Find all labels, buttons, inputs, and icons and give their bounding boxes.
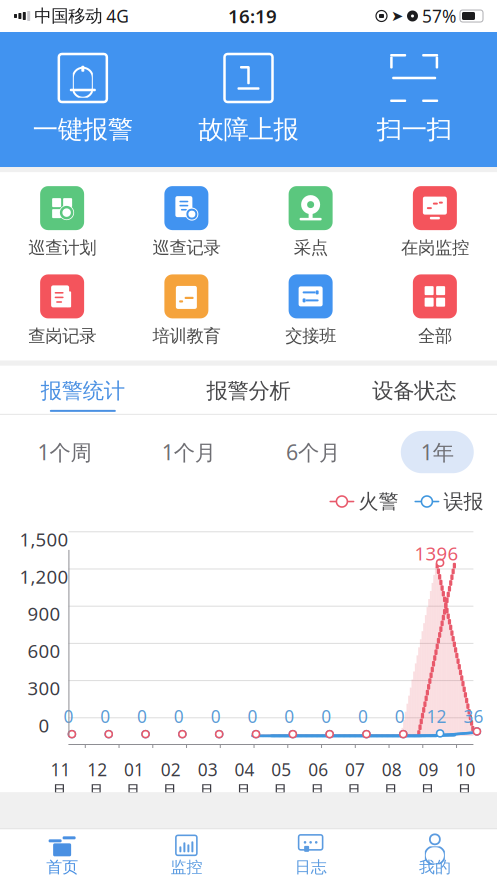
staticText: 扫一扫 <box>377 114 452 145</box>
staticText: 0 <box>38 713 49 738</box>
staticText: ➤ <box>391 8 403 24</box>
staticText: 0 <box>247 705 257 728</box>
staticText: 全部 <box>418 325 452 347</box>
staticText: 在岗监控 <box>401 237 469 258</box>
staticText: 0 <box>284 705 294 728</box>
staticText: 1,500 <box>19 527 68 552</box>
staticText: 1,200 <box>19 564 68 589</box>
staticText: 03月 <box>198 758 218 802</box>
staticText: 36 <box>463 705 483 728</box>
button[interactable]: 一键报警 <box>0 48 166 149</box>
button[interactable]: 扫一扫 <box>331 48 497 149</box>
staticText: 监控 <box>170 857 202 877</box>
button[interactable]: 采点 <box>248 186 373 258</box>
staticText: 0 <box>137 705 147 728</box>
button[interactable]: 1个月 <box>127 431 251 473</box>
staticText: 05月 <box>271 758 291 802</box>
button[interactable]: 监控 <box>124 829 248 877</box>
staticText: 07月 <box>345 758 365 802</box>
staticText: 12月 <box>87 758 107 802</box>
button[interactable]: 我的 <box>373 829 497 877</box>
staticText: 1个周 <box>37 438 91 466</box>
staticText: 0 <box>321 705 331 728</box>
button[interactable]: 报警统计 <box>0 366 166 414</box>
staticText: 报警分析 <box>206 378 290 404</box>
staticText: 09月 <box>419 758 439 802</box>
staticText: 900 <box>27 601 60 626</box>
button[interactable]: 6个月 <box>251 431 375 473</box>
staticText: 采点 <box>294 237 328 258</box>
button[interactable]: 巡查计划 <box>0 186 124 258</box>
staticText: 故障上报 <box>198 114 298 145</box>
staticText: 16:19 <box>228 4 277 28</box>
button[interactable]: 查岗记录 <box>0 274 124 347</box>
staticText: 06月 <box>308 758 328 802</box>
staticText: 1个月 <box>162 438 216 466</box>
staticText: 1年 <box>421 438 454 466</box>
staticText: 交接班 <box>285 325 336 347</box>
staticText: 设备状态 <box>372 378 456 404</box>
staticText: 600 <box>27 638 60 663</box>
staticText: 巡查计划 <box>28 237 96 258</box>
button[interactable]: 1个周 <box>2 431 127 473</box>
button[interactable]: 设备状态 <box>331 366 497 414</box>
button[interactable]: 首页 <box>0 829 124 877</box>
staticText: 培训教育 <box>152 325 220 347</box>
staticText: 首页 <box>46 857 78 877</box>
staticText: 一键报警 <box>33 114 133 145</box>
button[interactable]: 交接班 <box>248 274 373 347</box>
button[interactable]: 全部 <box>373 274 497 347</box>
staticText: 300 <box>27 676 60 700</box>
staticText: 01月 <box>124 758 144 802</box>
staticText: 0 <box>100 705 110 728</box>
staticText: 日志 <box>295 857 327 877</box>
staticText: 12 <box>427 705 447 728</box>
staticText: 0 <box>174 705 184 728</box>
staticText: 04月 <box>234 758 254 802</box>
staticText: 火警 <box>358 489 398 514</box>
staticText: 08月 <box>382 758 402 802</box>
staticText: 1396 <box>415 541 459 566</box>
staticText: 0 <box>358 705 368 728</box>
button[interactable]: 日志 <box>248 829 373 877</box>
button[interactable]: 报警分析 <box>166 366 331 414</box>
staticText: 我的 <box>419 857 451 877</box>
staticText: 报警统计 <box>41 378 125 404</box>
staticText: 6个月 <box>286 438 340 466</box>
staticText: 0 <box>211 705 221 728</box>
staticText: 10月 <box>455 758 475 802</box>
staticText: 02月 <box>161 758 181 802</box>
staticText: 查岗记录 <box>28 325 96 347</box>
button[interactable]: 1年 <box>375 431 497 473</box>
staticText: 57% <box>422 4 456 27</box>
staticText: 巡查记录 <box>152 237 220 258</box>
staticText: 中国移动 <box>34 5 102 27</box>
staticText: 0 <box>395 705 405 728</box>
staticText: 11月 <box>50 758 70 802</box>
staticText: 4G <box>106 4 129 27</box>
button[interactable]: 在岗监控 <box>373 186 497 258</box>
button[interactable]: 巡查记录 <box>124 186 248 258</box>
button[interactable]: 培训教育 <box>124 274 248 347</box>
staticText: 误报 <box>443 489 483 514</box>
staticText: 0 <box>63 705 73 728</box>
button[interactable]: 故障上报 <box>166 48 331 149</box>
